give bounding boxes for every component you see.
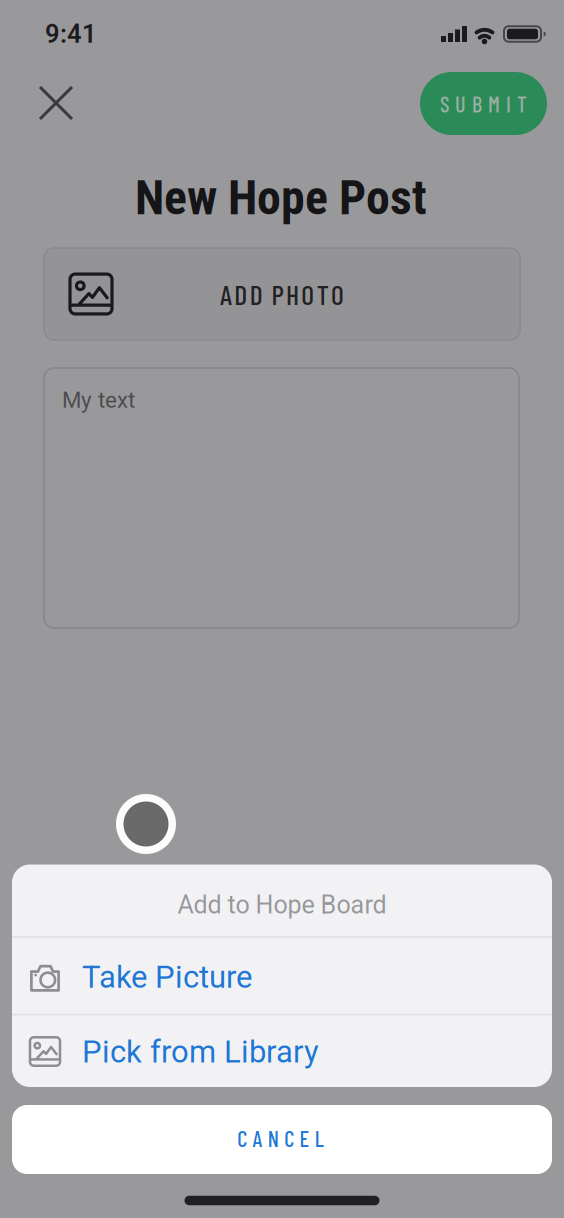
staticText: M <box>488 90 500 117</box>
staticText: A <box>253 1125 263 1151</box>
staticText: A <box>220 277 232 310</box>
staticText: N <box>268 1125 279 1151</box>
staticText: T <box>517 90 527 117</box>
staticText: O <box>301 277 314 310</box>
button[interactable]: Pick from Library <box>12 1014 552 1086</box>
staticText: T <box>317 277 329 310</box>
staticText: 9:41 <box>45 19 97 49</box>
staticText: D <box>234 277 247 310</box>
staticText: C <box>237 1125 247 1151</box>
staticText: My text <box>62 387 135 413</box>
staticText: L <box>315 1125 324 1151</box>
button[interactable]: A <box>44 248 520 340</box>
staticText: C <box>284 1125 294 1151</box>
staticText: Add to Hope Board <box>177 890 386 920</box>
button[interactable]: S <box>420 72 547 135</box>
staticText: H <box>286 277 299 310</box>
staticText: B <box>472 90 482 117</box>
button[interactable] <box>28 75 84 131</box>
staticText: U <box>455 90 466 117</box>
staticText: New Hope Post <box>135 170 427 226</box>
staticText: Pick from Library <box>82 1034 319 1070</box>
staticText: Take Picture <box>82 959 252 995</box>
staticText: S <box>440 90 449 117</box>
staticText: D <box>250 277 263 310</box>
staticText: O <box>331 277 344 310</box>
button[interactable]: Take Picture <box>12 937 552 1014</box>
staticText: E <box>299 1125 309 1151</box>
button[interactable]: C <box>12 1105 552 1174</box>
staticText: P <box>271 277 283 310</box>
staticText: I <box>506 90 511 117</box>
